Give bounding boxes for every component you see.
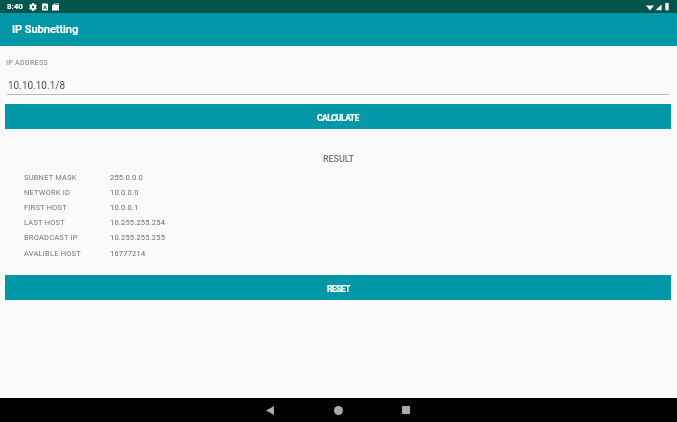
staticText: BROADCAST IP	[24, 233, 78, 242]
staticText: 10.0.0.0	[110, 188, 139, 197]
staticText: SUBNET MASK	[24, 173, 77, 182]
staticText: RESET	[327, 284, 350, 294]
staticText: IP Subnetting	[12, 23, 79, 36]
staticText: 10.255.255.255	[110, 233, 166, 242]
button[interactable]: Home	[330, 402, 346, 418]
button[interactable]: CALCULATE	[5, 104, 671, 129]
staticText: 8:40	[7, 2, 23, 11]
staticText: LAST HOST	[24, 218, 65, 227]
staticText: CALCULATE	[317, 113, 359, 123]
staticText: 255.0.0.0	[110, 173, 144, 182]
staticText: 16777214	[110, 249, 146, 258]
staticText: IP ADDRESS	[6, 59, 48, 67]
button[interactable]: RESET	[5, 275, 671, 300]
staticText: 10.255.255.254	[110, 218, 166, 227]
button[interactable]: Recent apps	[398, 402, 414, 418]
staticText: FIRST HOST	[24, 203, 67, 212]
staticText: RESULT	[0, 154, 677, 165]
button[interactable]: Back	[262, 402, 278, 418]
staticText: AVALIBLE HOST	[24, 249, 81, 258]
staticText: NETWORK ID	[24, 188, 71, 197]
staticText: 10.0.0.1	[110, 203, 139, 212]
staticText: 10.10.10.1/8	[8, 80, 65, 92]
